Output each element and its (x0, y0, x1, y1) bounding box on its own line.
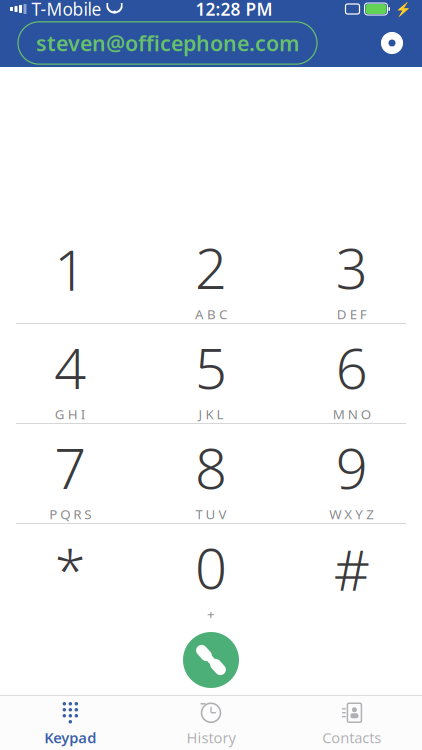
staticText: 9 (336, 430, 368, 504)
button[interactable]: 5 (141, 324, 281, 423)
staticText: # (334, 532, 370, 606)
staticText: A B C (195, 305, 227, 323)
staticText: W X Y Z (329, 505, 374, 523)
staticText: 12:28 PM (195, 0, 272, 20)
button[interactable]: * (0, 524, 141, 623)
button[interactable]: Contacts (281, 696, 422, 750)
button[interactable]: Call (183, 632, 239, 688)
button[interactable]: 1 (0, 224, 141, 323)
button[interactable]: # (281, 524, 422, 623)
staticText: 5 (195, 330, 227, 404)
button[interactable]: 7 (0, 424, 141, 523)
staticText: History (186, 728, 235, 747)
button[interactable]: 3 (281, 224, 422, 323)
staticText: steven@officephone.com (36, 29, 299, 57)
button[interactable]: Settings (370, 21, 414, 65)
staticText: + (207, 605, 215, 623)
staticText: * (55, 532, 86, 606)
button[interactable]: History (141, 696, 281, 750)
staticText: J K L (198, 405, 223, 423)
staticText: D E F (337, 305, 367, 323)
staticText: ⚡ (395, 1, 412, 17)
staticText: 4 (54, 330, 86, 404)
staticText: T U V (195, 505, 226, 523)
button[interactable]: 2 (141, 224, 281, 323)
staticText: M N O (333, 405, 371, 423)
button[interactable]: steven@officephone.com (18, 22, 317, 64)
staticText: 1 (54, 232, 86, 306)
button[interactable]: 4 (0, 324, 141, 423)
staticText: Keypad (44, 728, 96, 747)
button[interactable]: 0 (141, 524, 281, 623)
staticText: 7 (54, 430, 86, 504)
button[interactable]: 8 (141, 424, 281, 523)
staticText: 2 (195, 230, 227, 304)
staticText: T-Mobile (31, 0, 101, 20)
button[interactable]: Keypad (0, 696, 141, 750)
button[interactable]: 9 (281, 424, 422, 523)
staticText: Contacts (322, 728, 381, 747)
staticText: 0 (195, 530, 227, 604)
button[interactable]: 6 (281, 324, 422, 423)
staticText: P Q R S (49, 505, 91, 523)
staticText: G H I (55, 405, 86, 423)
staticText: 3 (336, 230, 368, 304)
staticText: 6 (336, 330, 368, 404)
staticText: 8 (195, 430, 227, 504)
